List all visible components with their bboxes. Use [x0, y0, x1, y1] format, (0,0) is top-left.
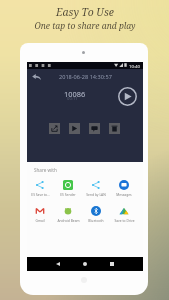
button[interactable]: Recent apps [105, 257, 119, 271]
staticText: Send by LAN [86, 192, 106, 196]
staticText: ES Sender [60, 192, 76, 196]
button[interactable]: Gmail [26, 206, 54, 222]
staticText: Gmail [35, 218, 45, 222]
button[interactable]: Messages [110, 180, 138, 196]
button[interactable]: Android Beam [54, 206, 82, 222]
staticText: Bluetooth [88, 218, 104, 222]
staticText: Save to Drive [114, 218, 135, 222]
staticText: One tap to share and play [34, 20, 136, 32]
staticText: Messages [116, 192, 132, 196]
button[interactable]: Bluetooth [82, 206, 110, 222]
staticText: Android Beam [57, 218, 80, 222]
button[interactable]: ES Save to... [26, 180, 54, 196]
button[interactable]: Back [28, 69, 44, 85]
button[interactable]: Play [118, 87, 137, 106]
button[interactable]: Share [49, 123, 60, 134]
button[interactable]: Home [78, 257, 92, 271]
button[interactable]: Send by LAN [82, 180, 110, 196]
staticText: Easy To Use [56, 5, 114, 19]
button[interactable]: ES Sender [54, 180, 82, 196]
button[interactable]: Save to Drive [110, 206, 138, 222]
staticText: 00:11 [67, 96, 78, 102]
button[interactable]: Message [89, 123, 100, 134]
button[interactable]: Play [69, 123, 80, 134]
staticText: ES Save to... [31, 192, 50, 196]
staticText: 2018-06-28 14:30:57 [59, 73, 112, 81]
staticText: Share with [34, 167, 57, 173]
button[interactable]: Delete [109, 123, 120, 134]
staticText: 10:40 [129, 63, 140, 69]
staticText: 10086 [64, 89, 86, 99]
button[interactable]: Back [51, 257, 65, 271]
